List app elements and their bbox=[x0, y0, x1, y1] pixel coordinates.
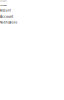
staticText: Account bbox=[0, 14, 13, 19]
staticText: Account bbox=[0, 0, 6, 2]
staticText: Account bbox=[0, 8, 11, 12]
staticText: Notifications bbox=[0, 21, 17, 24]
staticText: Account bbox=[0, 4, 7, 6]
